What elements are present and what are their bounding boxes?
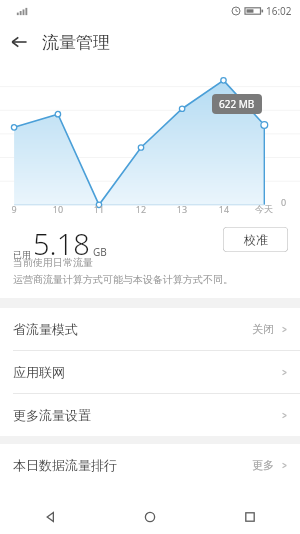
- staticText: 622 MB: [219, 97, 255, 111]
- button[interactable]: 622 MB: [212, 94, 262, 114]
- staticText: 13: [168, 203, 196, 215]
- button[interactable]: Recents: [200, 500, 300, 534]
- staticText: 应用联网: [13, 364, 65, 380]
- button[interactable]: 校准: [223, 227, 288, 252]
- staticText: 关闭: [252, 322, 274, 336]
- staticText: 16:02: [266, 4, 292, 18]
- button[interactable]: 更多流量设置: [0, 394, 300, 436]
- button[interactable]: 省流量模式: [0, 308, 300, 350]
- staticText: 流量管理: [42, 32, 110, 53]
- staticText: 本日数据流量排行: [13, 457, 117, 473]
- button[interactable]: Back: [0, 23, 38, 61]
- staticText: 更多: [252, 458, 274, 472]
- staticText: 9: [0, 203, 28, 215]
- staticText: 10: [44, 203, 72, 215]
- button[interactable]: Home: [100, 500, 200, 534]
- button[interactable]: Back: [0, 500, 100, 534]
- staticText: 当前使用日常流量: [13, 256, 93, 269]
- staticText: 更多流量设置: [13, 407, 91, 423]
- staticText: 11: [85, 203, 113, 215]
- staticText: 12: [127, 203, 155, 215]
- staticText: 校准: [244, 232, 268, 247]
- staticText: GB: [93, 245, 107, 259]
- button[interactable]: 本日数据流量排行: [0, 444, 300, 486]
- staticText: 运营商流量计算方式可能与本设备计算方式不同。: [13, 273, 233, 286]
- staticText: 省流量模式: [13, 321, 78, 337]
- staticText: 0: [281, 196, 287, 208]
- staticText: 5.18: [33, 224, 90, 263]
- staticText: 已用: [13, 249, 31, 260]
- button[interactable]: 应用联网: [0, 351, 300, 393]
- staticText: 14: [210, 203, 238, 215]
- staticText: 今天: [250, 203, 278, 214]
